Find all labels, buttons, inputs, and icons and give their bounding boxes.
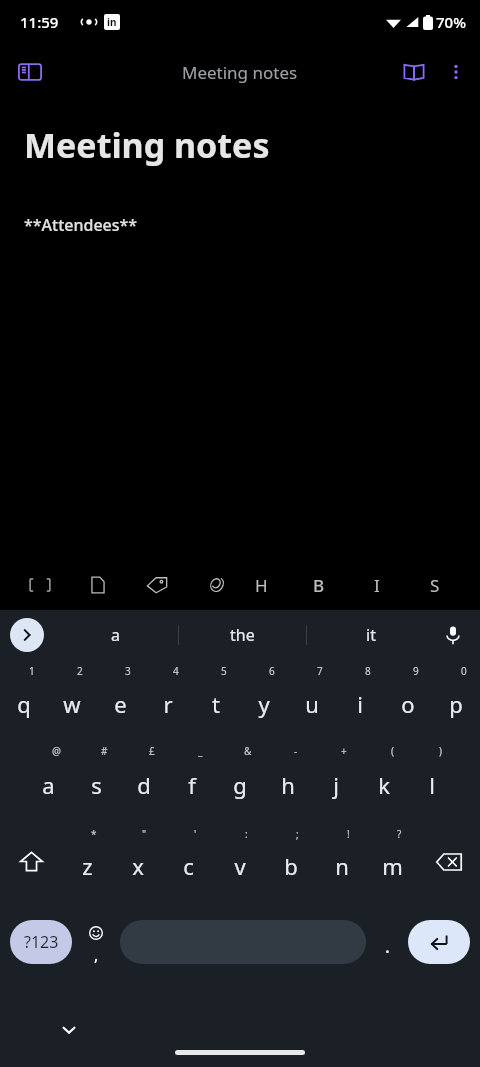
button[interactable]: it [307, 610, 434, 660]
button[interactable]: : [214, 821, 265, 902]
staticText: a [111, 624, 120, 646]
staticText: j [333, 770, 339, 800]
staticText: 4 [173, 664, 179, 678]
staticText: , [94, 944, 99, 966]
staticText: 1 [29, 664, 35, 678]
button[interactable]: H [232, 560, 290, 610]
button[interactable]: ( [360, 740, 408, 821]
staticText: a [42, 770, 55, 800]
button[interactable]: ? [367, 821, 418, 902]
staticText: l [429, 770, 435, 800]
button[interactable]: - [264, 740, 312, 821]
staticText: g [233, 770, 247, 800]
staticText: e [114, 689, 127, 719]
button[interactable]: 1 [0, 660, 48, 740]
staticText: 7 [317, 664, 323, 678]
staticText: o [401, 689, 415, 719]
staticText: ; [296, 827, 299, 841]
button[interactable]: Enter [408, 920, 470, 964]
staticText: in [107, 15, 117, 29]
button[interactable]: ) [408, 740, 456, 821]
staticText: ? [397, 827, 402, 841]
staticText: 9 [413, 664, 419, 678]
button[interactable]: Hide keyboard [54, 1015, 84, 1045]
button[interactable]: Space [120, 920, 366, 964]
button[interactable]: 7 [288, 660, 336, 740]
button[interactable]: 3 [96, 660, 144, 740]
staticText: * [91, 827, 97, 841]
staticText: B [313, 574, 325, 597]
button[interactable]: 9 [384, 660, 432, 740]
staticText: : [245, 827, 248, 841]
button[interactable]: 6 [240, 660, 288, 740]
button[interactable]: I [348, 560, 406, 610]
staticText: the [230, 624, 255, 646]
button[interactable]: # [72, 740, 120, 821]
staticText: 5 [221, 664, 227, 678]
staticText: + [341, 744, 347, 758]
staticText: 11:59 [20, 12, 59, 32]
button[interactable]: 5 [192, 660, 240, 740]
staticText: - [294, 744, 298, 758]
button[interactable]: Shift [0, 821, 62, 902]
staticText: m [382, 851, 403, 881]
staticText: u [305, 689, 319, 719]
staticText: H [255, 574, 268, 597]
staticText: . [385, 934, 390, 959]
button[interactable]: * [62, 821, 112, 902]
button[interactable]: £ [120, 740, 168, 821]
button[interactable]: Emoji and comma [72, 902, 120, 981]
staticText: " [142, 827, 147, 841]
staticText: k [378, 770, 390, 800]
button[interactable]: 8 [336, 660, 384, 740]
button[interactable]: @ [24, 740, 72, 821]
staticText: h [281, 770, 295, 800]
staticText: Meeting notes [182, 61, 298, 84]
staticText: p [449, 689, 463, 719]
button[interactable]: & [216, 740, 264, 821]
staticText: 8 [365, 664, 371, 678]
staticText: t [212, 689, 220, 719]
staticText: ( [391, 744, 394, 758]
button[interactable]: a [52, 610, 178, 660]
button[interactable]: Backspace [418, 821, 480, 902]
button[interactable]: _ [168, 740, 216, 821]
button[interactable]: the [179, 610, 306, 660]
button[interactable]: S [406, 560, 464, 610]
button[interactable]: ! [316, 821, 367, 902]
staticText: 6 [269, 664, 275, 678]
button[interactable]: B [290, 560, 348, 610]
staticText: x [132, 851, 144, 881]
button[interactable]: clip [174, 560, 232, 610]
button[interactable]: 4 [144, 660, 192, 740]
staticText: 2 [77, 664, 83, 678]
staticText: _ [198, 744, 203, 758]
staticText: f [188, 770, 196, 800]
button[interactable]: 2 [48, 660, 96, 740]
staticText: ' [194, 827, 197, 841]
button[interactable]: Reading mode [392, 50, 436, 94]
staticText: s [91, 770, 102, 800]
button[interactable]: + [312, 740, 360, 821]
button[interactable]: Side panel [8, 50, 52, 94]
button[interactable]: Period [366, 902, 408, 981]
button[interactable]: tag [116, 560, 174, 610]
button[interactable]: [] [0, 560, 58, 610]
staticText: # [101, 744, 108, 758]
button[interactable]: doc [58, 560, 116, 610]
button[interactable]: " [112, 821, 163, 902]
button[interactable]: More options [436, 52, 476, 92]
staticText: i [357, 689, 363, 719]
staticText: 0 [461, 664, 467, 678]
button[interactable]: ?123 [10, 920, 72, 964]
button[interactable]: ' [163, 821, 214, 902]
staticText: y [258, 689, 270, 719]
staticText: c [183, 851, 194, 881]
button[interactable]: 0 [432, 660, 480, 740]
staticText: ?123 [24, 931, 59, 953]
staticText: n [335, 851, 349, 881]
button[interactable]: Voice input [436, 618, 470, 652]
button[interactable]: Expand toolbar [10, 618, 44, 652]
staticText: 3 [125, 664, 131, 678]
button[interactable]: ; [265, 821, 316, 902]
